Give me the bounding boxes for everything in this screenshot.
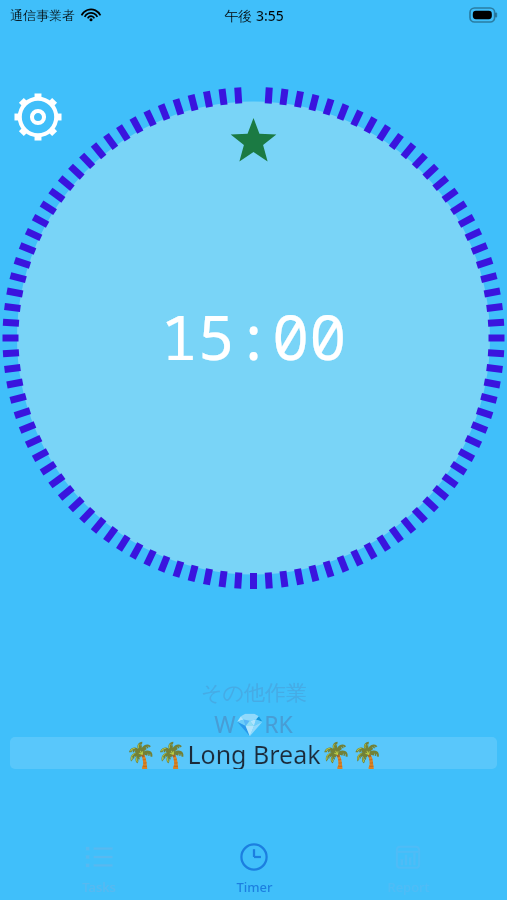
- button[interactable]: Settings: [14, 93, 62, 141]
- button[interactable]: Tasks: [44, 832, 154, 896]
- staticText: 🌴🌴Long Break🌴🌴: [125, 737, 383, 769]
- staticText: その他作業: [201, 680, 307, 706]
- staticText: Tasks: [82, 878, 116, 896]
- staticText: 通信事業者: [10, 7, 75, 23]
- staticText: Report: [387, 878, 430, 896]
- button[interactable]: 🌴🌴Long Break🌴🌴: [10, 737, 497, 769]
- button[interactable]: Timer: [199, 832, 309, 896]
- staticText: 午後 3:55: [224, 6, 284, 25]
- staticText: 15:00: [160, 294, 347, 378]
- button[interactable]: Report: [353, 832, 463, 896]
- staticText: W💎RK: [214, 708, 293, 739]
- staticText: Timer: [236, 878, 273, 896]
